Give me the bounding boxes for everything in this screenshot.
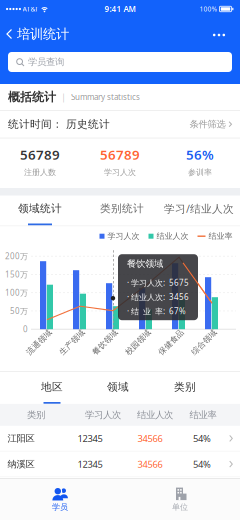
button[interactable]: 学员查询 <box>8 52 232 72</box>
staticText: 领域 <box>107 380 129 393</box>
staticText: | <box>61 91 66 103</box>
staticText: 54% <box>193 432 211 445</box>
staticText: AT&T <box>22 5 38 13</box>
button[interactable]: 领域 <box>103 376 133 397</box>
staticText: 0 <box>23 324 28 334</box>
staticText: 56789 <box>100 146 140 163</box>
staticText: 12345 <box>77 458 102 470</box>
staticText: 学员查询 <box>28 56 64 68</box>
button[interactable]: 学员 <box>0 479 120 520</box>
staticText: 学习人次 <box>104 167 136 177</box>
staticText: 150万 <box>5 269 28 280</box>
staticText: 保健食品 <box>155 337 187 347</box>
staticText: 100% <box>199 5 217 13</box>
staticText: 12345 <box>77 432 102 445</box>
staticText: 流通领域 <box>23 337 55 347</box>
staticText: 学习人次 <box>107 231 139 241</box>
staticText: 结业人次 <box>156 231 188 241</box>
button[interactable]: More <box>209 30 229 40</box>
staticText: 学习人次 <box>85 409 121 421</box>
staticText: 9:41 AM <box>104 4 135 14</box>
staticText: 统计时间： 历史统计 <box>8 118 110 131</box>
staticText: 结业率 <box>208 231 232 241</box>
button[interactable]: 学习/结业人次 <box>160 197 238 220</box>
staticText: 56789 <box>20 146 60 163</box>
button[interactable]: 单位 <box>120 479 240 520</box>
staticText: 学习/结业人次 <box>164 201 234 216</box>
staticText: 结业率 <box>189 409 216 421</box>
staticText: 生产领域 <box>56 337 88 347</box>
staticText: 参训率 <box>188 167 212 177</box>
staticText: 类别统计 <box>100 202 144 215</box>
button[interactable]: 统计时间： 历史统计 <box>0 111 240 138</box>
staticText: 结业人次 <box>137 409 173 421</box>
button[interactable]: 纳溪区 <box>0 452 240 477</box>
button[interactable]: 类别 <box>170 376 200 397</box>
staticText: 领域统计 <box>18 202 62 215</box>
staticText: 餐饮领域 <box>89 337 121 347</box>
button[interactable]: 地区 <box>37 376 67 397</box>
staticText: · 学习人次: 5675 <box>127 277 189 288</box>
button[interactable]: 类别统计 <box>96 198 148 219</box>
staticText: · 结 业 率: 67% <box>127 306 186 316</box>
staticText: 江阳区 <box>7 433 34 444</box>
staticText: 100万 <box>5 287 28 298</box>
staticText: 34566 <box>137 458 162 470</box>
button[interactable]: 领域统计 <box>14 198 66 219</box>
staticText: 单位 <box>172 502 188 512</box>
staticText: 34566 <box>137 432 162 445</box>
staticText: 50万 <box>10 306 28 316</box>
staticText: 注册人数 <box>24 167 56 177</box>
staticText: 200万 <box>5 251 28 261</box>
staticText: Summary statistics <box>71 92 140 102</box>
staticText: 学员 <box>52 502 68 512</box>
staticText: 条件筛选 <box>190 118 226 130</box>
staticText: 类别 <box>174 380 196 393</box>
button[interactable]: 江阳区 <box>0 426 240 451</box>
staticText: 纳溪区 <box>7 458 34 470</box>
button[interactable]: Back <box>0 26 69 42</box>
staticText: 54% <box>193 458 211 470</box>
staticText: · 结业人次: 3456 <box>127 292 189 302</box>
staticText: 地区 <box>41 380 63 393</box>
staticText: 餐饮领域 <box>127 258 163 269</box>
staticText: 培训统计 <box>17 26 69 42</box>
staticText: 概括统计 <box>8 90 56 104</box>
staticText: 56% <box>186 146 214 163</box>
staticText: 综合领域 <box>188 337 220 347</box>
staticText: 类别 <box>27 409 45 421</box>
staticText: 校园领域 <box>122 337 154 347</box>
